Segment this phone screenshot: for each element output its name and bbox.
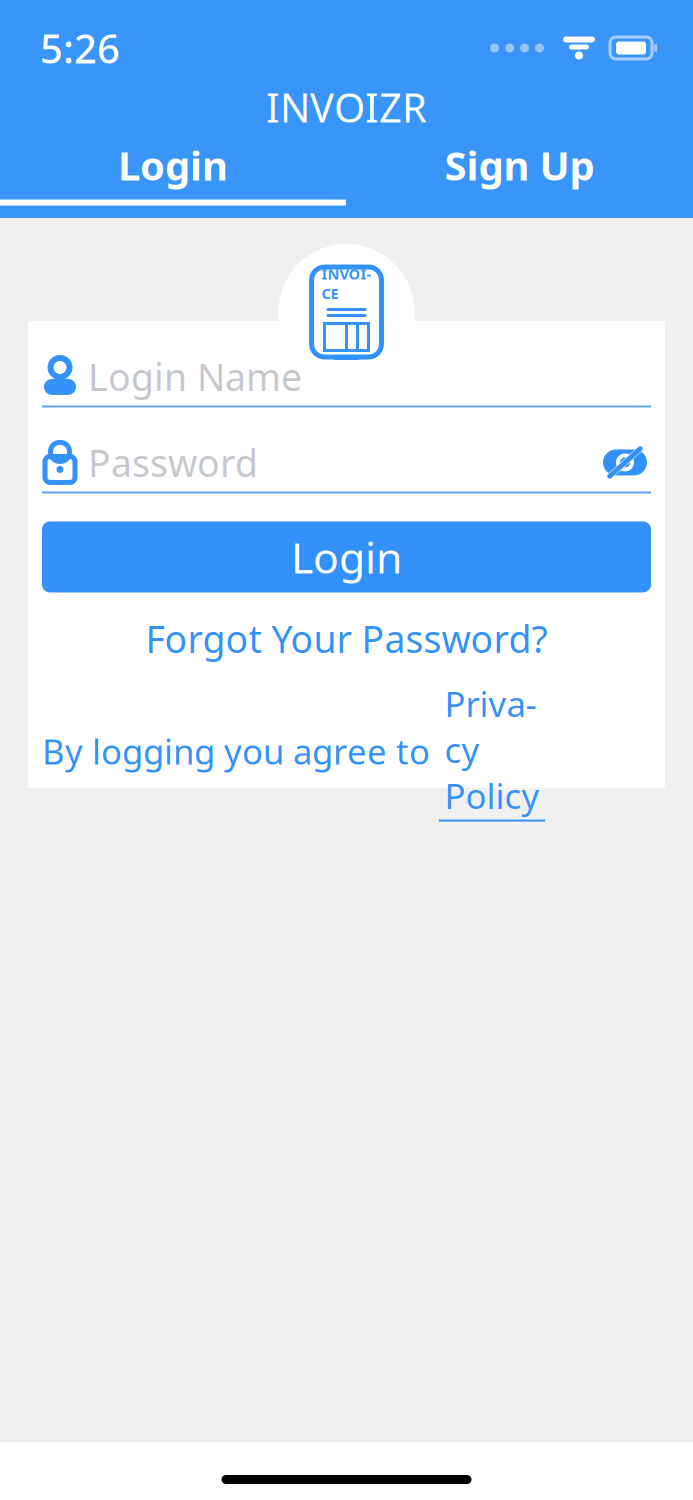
button[interactable]: Show password	[599, 439, 651, 485]
staticText: INVOICE	[321, 264, 371, 303]
staticText: Login	[291, 529, 402, 585]
staticText: INVOIZR	[266, 80, 427, 133]
staticText: Sign Up	[444, 138, 594, 191]
staticText: 5:26	[40, 21, 120, 74]
staticText: Privacy Policy	[444, 680, 539, 818]
button[interactable]: Login	[42, 521, 651, 592]
staticText: Password	[88, 438, 258, 487]
staticText: Login	[118, 138, 228, 191]
button[interactable]: Sign Up	[346, 137, 693, 199]
staticText: By logging you agree to	[42, 728, 439, 774]
staticText: Forgot Your Password?	[145, 614, 547, 663]
button[interactable]: Privacy Policy	[439, 680, 545, 821]
staticText: Login Name	[88, 352, 302, 401]
button[interactable]: Forgot Your Password?	[42, 614, 651, 662]
button[interactable]: Login	[0, 137, 346, 199]
